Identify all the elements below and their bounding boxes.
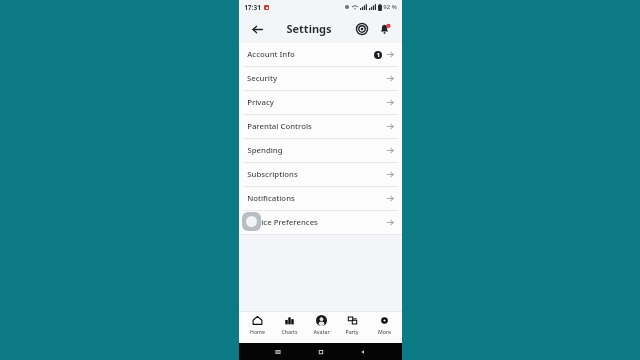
button[interactable]: Accessibility menu (242, 212, 261, 231)
staticText: Parental Controls (247, 121, 312, 132)
staticText: Avatar (313, 328, 330, 335)
button[interactable]: Back (247, 19, 267, 39)
button[interactable]: Party (338, 315, 366, 335)
staticText: Charts (281, 328, 298, 335)
button[interactable]: Account Info (239, 43, 402, 66)
button[interactable]: Device Preferences (239, 211, 402, 234)
staticText: Security (247, 73, 277, 84)
staticText: 92 % (383, 3, 397, 11)
staticText: 1 (377, 52, 380, 59)
button[interactable]: Charts (275, 315, 303, 335)
button[interactable]: Home (243, 315, 271, 335)
button[interactable]: Avatar (307, 315, 335, 335)
button[interactable]: Target (352, 19, 372, 39)
staticText: More (378, 328, 391, 335)
staticText: Privacy (247, 97, 274, 108)
button[interactable]: More (370, 315, 398, 335)
staticText: Home (250, 328, 265, 335)
staticText: Subscriptions (247, 169, 298, 180)
button[interactable]: Subscriptions (239, 163, 402, 186)
button[interactable]: Notifications (239, 187, 402, 210)
staticText: Account Info (247, 49, 295, 60)
button[interactable]: Security (239, 67, 402, 90)
staticText: Spending (247, 145, 283, 156)
staticText: 17:31 (244, 3, 261, 12)
button[interactable]: Privacy (239, 91, 402, 114)
staticText: Settings (286, 21, 332, 36)
button[interactable]: Parental Controls (239, 115, 402, 138)
staticText: Notifications (247, 193, 295, 204)
staticText: Party (345, 328, 359, 335)
staticText: Device Preferences (247, 217, 318, 228)
button[interactable]: Spending (239, 139, 402, 162)
button[interactable]: Notifications (374, 19, 394, 39)
